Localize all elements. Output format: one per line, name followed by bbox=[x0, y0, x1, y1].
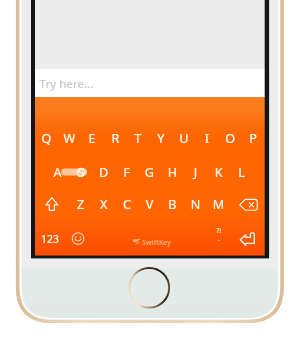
button[interactable]: S bbox=[69, 158, 92, 186]
button[interactable]: U bbox=[173, 124, 196, 152]
button[interactable]: Enter bbox=[242, 224, 265, 255]
button[interactable]: O bbox=[219, 124, 242, 152]
button[interactable]: F bbox=[115, 158, 138, 186]
button[interactable]: Try here text field bbox=[35, 69, 265, 97]
button[interactable]: B bbox=[161, 191, 184, 219]
button[interactable]: Q bbox=[35, 124, 58, 152]
button[interactable]: L bbox=[230, 158, 253, 186]
button[interactable]: Shift bbox=[35, 191, 69, 219]
button[interactable]: Z bbox=[69, 191, 92, 219]
button[interactable]: G bbox=[138, 158, 161, 186]
button[interactable]: Y bbox=[150, 124, 173, 152]
button[interactable]: C bbox=[115, 191, 138, 219]
button[interactable]: Emoji bbox=[67, 224, 97, 255]
button[interactable]: J bbox=[184, 158, 207, 186]
button[interactable]: V bbox=[138, 191, 161, 219]
button[interactable]: T bbox=[127, 124, 150, 152]
button[interactable]: W bbox=[58, 124, 81, 152]
button[interactable]: Numbers bbox=[35, 224, 67, 255]
button[interactable]: D bbox=[92, 158, 115, 186]
button[interactable]: P bbox=[242, 124, 265, 152]
button[interactable]: H bbox=[161, 158, 184, 186]
button[interactable]: I bbox=[196, 124, 219, 152]
button[interactable]: Backspace bbox=[230, 191, 264, 219]
button[interactable]: R bbox=[104, 124, 127, 152]
button[interactable]: Punctuation bbox=[219, 224, 242, 255]
button[interactable]: N bbox=[184, 191, 207, 219]
button[interactable]: Space bbox=[97, 224, 219, 255]
button[interactable]: E bbox=[81, 124, 104, 152]
button[interactable]: A bbox=[46, 158, 69, 186]
button[interactable]: X bbox=[92, 191, 115, 219]
button[interactable]: M bbox=[207, 191, 230, 219]
button[interactable]: K bbox=[207, 158, 230, 186]
